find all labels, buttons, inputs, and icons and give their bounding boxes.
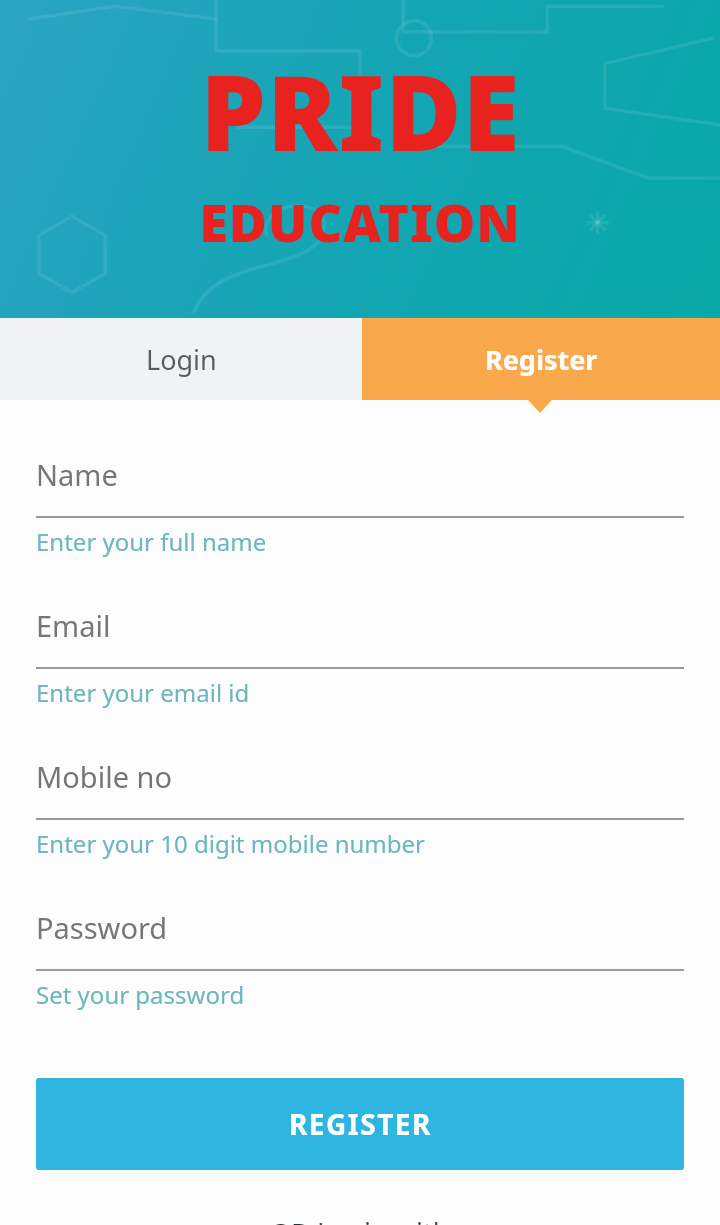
button[interactable]: REGISTER [36, 1078, 684, 1170]
staticText: OR [270, 1214, 317, 1225]
staticText: Email [36, 606, 111, 645]
staticText: Register [485, 341, 598, 378]
staticText: Enter your email id [36, 676, 250, 709]
staticText: REGISTER [289, 1105, 432, 1143]
staticText: EDUCATION [199, 186, 521, 257]
staticText: Login [146, 341, 217, 378]
button[interactable]: Login [0, 318, 362, 400]
staticText: Login with [317, 1214, 450, 1225]
button[interactable]: Name [0, 455, 720, 606]
button[interactable]: Mobile no [0, 757, 720, 908]
button[interactable]: Password [0, 908, 720, 1059]
staticText: PRIDE [200, 40, 521, 182]
staticText: Enter your full name [36, 525, 267, 558]
button[interactable]: Register [362, 318, 720, 400]
staticText: Password [36, 908, 168, 947]
button[interactable]: Email [0, 606, 720, 757]
staticText: Enter your 10 digit mobile number [36, 827, 425, 860]
staticText: Name [36, 455, 118, 494]
staticText: Mobile no [36, 757, 173, 796]
staticText: Set your password [36, 978, 245, 1011]
